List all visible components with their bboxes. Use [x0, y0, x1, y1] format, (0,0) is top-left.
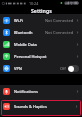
staticText: Not Connected — [45, 30, 74, 35]
staticText: Off — [60, 66, 66, 71]
staticText: Wi-Fi — [14, 18, 24, 23]
button[interactable]: Bluetooth — [0, 26, 82, 38]
staticText: Settings — [31, 7, 52, 14]
staticText: Personal Hotspot — [14, 54, 47, 59]
other: Open — [76, 31, 79, 34]
button[interactable]: Mobile Data — [0, 38, 82, 50]
staticText: Sounds & Haptics — [14, 104, 47, 109]
staticText: 10:24 — [29, 1, 39, 6]
button[interactable]: VPN toggle — [68, 65, 79, 72]
other: Open — [76, 90, 79, 93]
button[interactable]: Notifications — [0, 85, 82, 97]
staticText: Mobile Data — [14, 42, 37, 47]
other: Open — [76, 19, 79, 22]
staticText: Not Connected — [45, 18, 74, 23]
staticText: Notifications — [14, 89, 38, 94]
button[interactable]: Personal Hotspot — [0, 50, 82, 62]
other: Open — [76, 43, 79, 46]
button[interactable]: VPN — [0, 62, 82, 74]
button[interactable]: Wi-Fi — [0, 14, 82, 26]
staticText: Bluetooth — [14, 30, 33, 35]
other: Open — [75, 105, 78, 108]
staticText: VPN — [14, 66, 22, 71]
other: Open — [76, 55, 79, 58]
button[interactable]: Sounds & Haptics — [1, 100, 81, 116]
